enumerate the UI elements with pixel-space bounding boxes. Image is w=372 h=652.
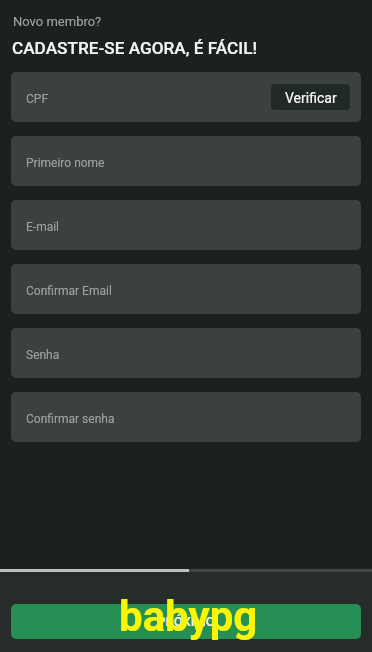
button[interactable]: Confirmar senha (11, 392, 361, 442)
staticText: PRÓXIMO (157, 614, 215, 629)
button[interactable]: Verificar (271, 84, 350, 110)
staticText: CADASTRE-SE AGORA, É FÁCIL! (12, 38, 257, 58)
staticText: Senha (26, 348, 60, 362)
button[interactable]: Confirmar Email (11, 264, 361, 314)
staticText: CPF (26, 92, 49, 106)
button[interactable]: Senha (11, 328, 361, 378)
staticText: Confirmar Email (26, 284, 112, 298)
other: Progresso do cadastro (0, 569, 372, 572)
staticText: Primeiro nome (26, 156, 105, 170)
staticText: E-mail (26, 220, 60, 234)
button[interactable]: PRÓXIMO (11, 604, 361, 639)
staticText: Novo membro? (13, 14, 102, 29)
button[interactable]: E-mail (11, 200, 361, 250)
staticText: babypg (119, 592, 258, 641)
button[interactable]: CPF (11, 72, 361, 122)
staticText: Confirmar senha (26, 412, 115, 426)
staticText: Verificar (285, 90, 337, 106)
button[interactable]: Primeiro nome (11, 136, 361, 186)
